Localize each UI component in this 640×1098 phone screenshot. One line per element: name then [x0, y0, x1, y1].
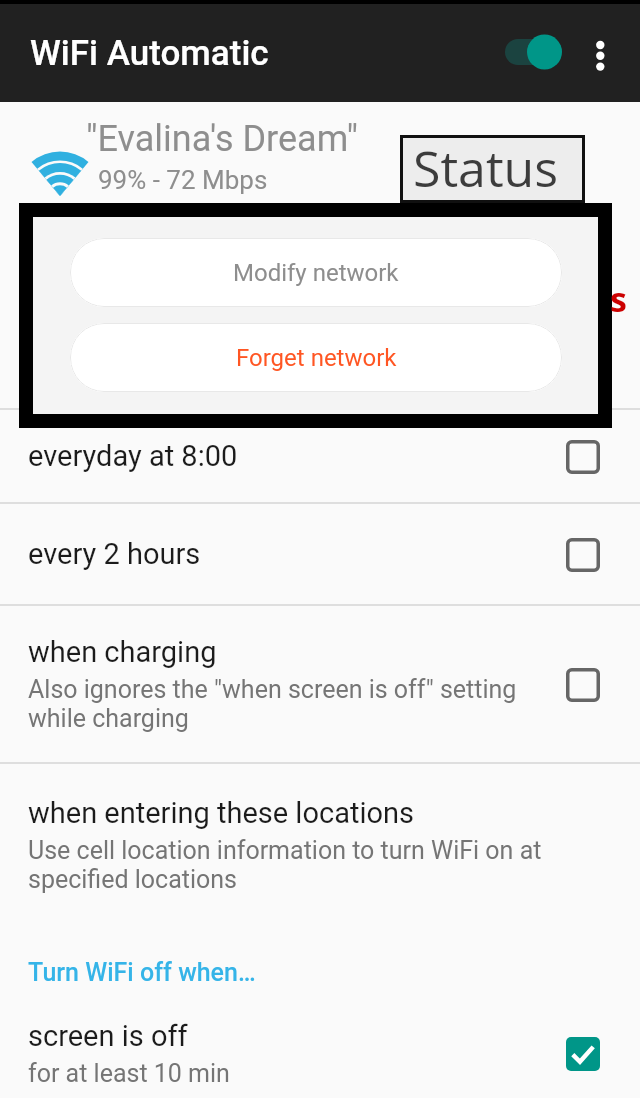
button[interactable]: every 2 hours — [0, 504, 640, 604]
staticText: every 2 hours — [28, 537, 566, 571]
staticText: for at least 10 min — [28, 1059, 230, 1088]
staticText: Use cell location information to turn Wi… — [28, 836, 542, 894]
button[interactable]: Status — [400, 135, 585, 203]
button[interactable]: Checkbox — [566, 1037, 600, 1071]
staticText: screen is off — [28, 1019, 188, 1053]
button[interactable]: WiFi automation enabled — [501, 30, 567, 74]
staticText: "Evalina's Dream" — [86, 118, 358, 160]
staticText: when charging — [28, 635, 217, 669]
button[interactable]: screen is off — [0, 1008, 640, 1098]
staticText: 99% - 72 Mbps — [98, 165, 268, 195]
button[interactable]: when charging — [0, 606, 640, 762]
button[interactable]: Forget network — [70, 323, 562, 392]
staticText: when entering these locations — [28, 796, 414, 830]
button[interactable]: More options — [578, 24, 623, 88]
staticText: Forget network — [236, 344, 397, 372]
button[interactable]: Checkbox — [566, 440, 600, 474]
staticText: s — [610, 276, 627, 322]
staticText: WiFi Automatic — [30, 33, 269, 74]
staticText: Modify network — [233, 259, 399, 287]
button[interactable]: Checkbox — [566, 668, 600, 702]
button[interactable]: Checkbox — [566, 538, 600, 572]
staticText: Also ignores the "when screen is off" se… — [28, 675, 517, 733]
staticText: everyday at 8:00 — [28, 439, 566, 473]
button[interactable]: everyday at 8:00 — [0, 410, 640, 502]
staticText: Turn WiFi off when… — [28, 958, 256, 987]
staticText: Status — [413, 134, 559, 202]
button[interactable]: when entering these locations — [0, 780, 640, 910]
button[interactable]: Modify network — [70, 238, 562, 307]
